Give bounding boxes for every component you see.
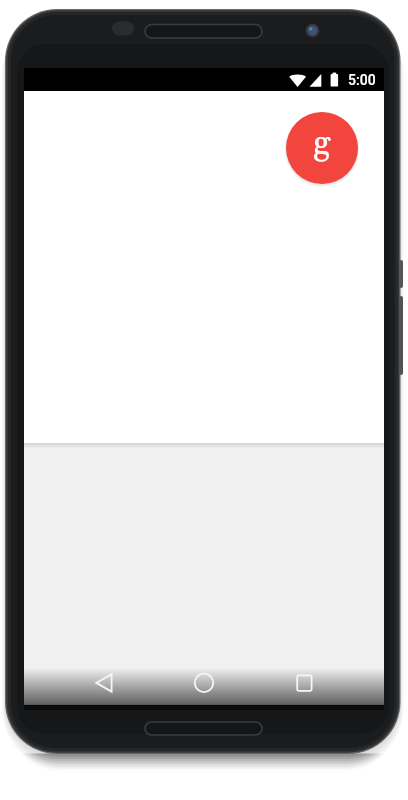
button[interactable] (180, 661, 228, 709)
staticText: g (313, 122, 331, 165)
button[interactable]: g (286, 112, 358, 184)
button[interactable] (280, 661, 328, 709)
button[interactable] (80, 661, 128, 709)
staticText: 5:00 (348, 72, 376, 88)
